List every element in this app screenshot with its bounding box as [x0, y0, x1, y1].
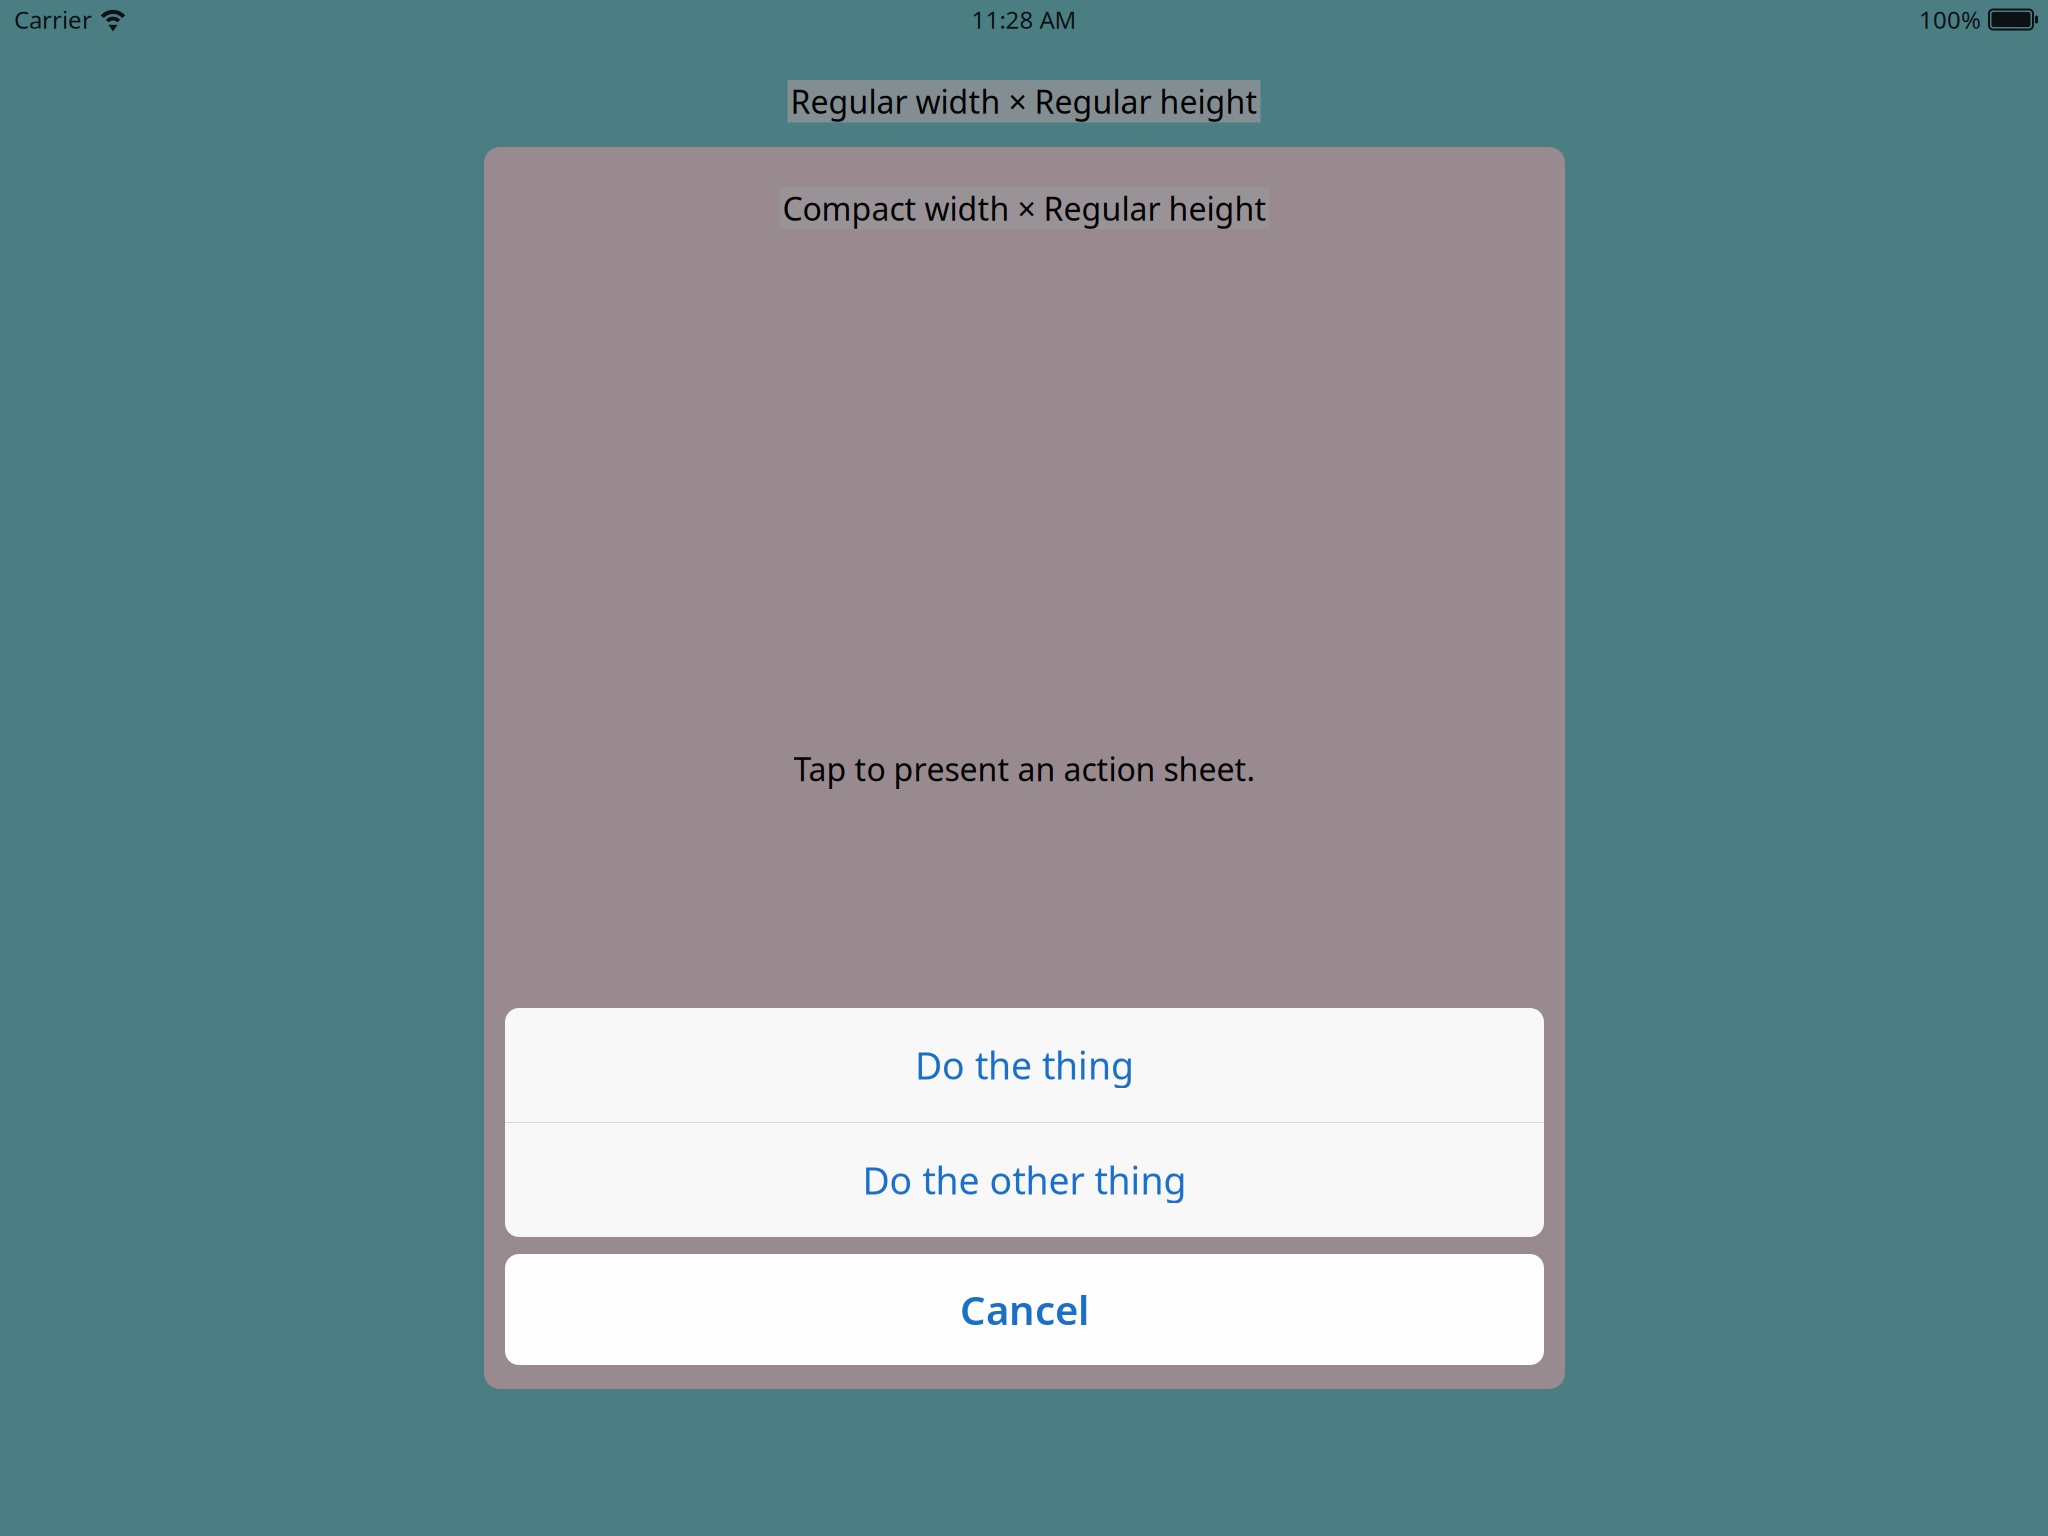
staticText: 11:28 AM [971, 4, 1076, 35]
staticText: Tap to present an action sheet. [793, 747, 1255, 790]
button[interactable]: Do the other thing [505, 1123, 1544, 1237]
staticText: Carrier [14, 4, 92, 35]
button[interactable]: Do the thing [505, 1008, 1544, 1122]
button[interactable]: Cancel [505, 1254, 1544, 1365]
staticText: Regular width × Regular height [790, 80, 1257, 122]
staticText: Compact width × Regular height [782, 187, 1266, 229]
button[interactable]: Tap to present an action sheet. [793, 747, 1255, 790]
staticText: Do the thing [915, 1040, 1134, 1090]
staticText: 100% [1919, 4, 1981, 35]
staticText: Do the other thing [862, 1155, 1186, 1205]
staticText: Cancel [960, 1283, 1089, 1336]
